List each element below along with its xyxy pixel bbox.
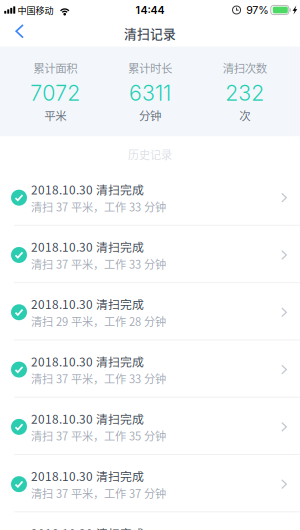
staticText: 2018.10.30 清扫完成 xyxy=(31,410,144,427)
staticText: 中国移动 xyxy=(17,3,53,16)
button[interactable]: 2018.10.30 清扫完成 xyxy=(0,168,300,226)
staticText: 累计面积 xyxy=(33,59,77,76)
staticText: 7072 xyxy=(30,80,80,106)
staticText: 2018.10.30 清扫完成 xyxy=(31,467,144,484)
staticText: 平米 xyxy=(44,107,66,123)
staticText: 清扫 37 平米，工作 37 分钟 xyxy=(31,485,166,501)
staticText: 6311 xyxy=(129,80,171,106)
staticText: 分钟 xyxy=(139,107,161,123)
staticText: 14:44 xyxy=(135,3,164,16)
staticText: 清扫 29 平米，工作 28 分钟 xyxy=(31,313,166,329)
button[interactable]: 2018.10.30 清扫完成 xyxy=(0,512,300,530)
staticText: 97% xyxy=(246,3,268,16)
button[interactable]: 2018.10.30 清扫完成 xyxy=(0,340,300,398)
staticText: 次 xyxy=(239,107,250,123)
staticText: 清扫次数 xyxy=(223,59,267,76)
staticText: 清扫 37 平米，工作 33 分钟 xyxy=(31,198,166,215)
staticText: 2018.10.30 清扫完成 xyxy=(31,181,144,198)
staticText: 清扫记录 xyxy=(124,24,176,42)
staticText: 2018.10.30 清扫完成 xyxy=(31,295,144,312)
staticText: 2018.10.30 清扫完成 xyxy=(31,238,144,255)
button[interactable]: 2018.10.30 清扫完成 xyxy=(0,455,300,512)
staticText: 清扫 37 平米，工作 33 分钟 xyxy=(31,370,166,386)
staticText: 2018.10.30 清扫完成 xyxy=(31,524,144,530)
staticText: 清扫 37 平米，工作 35 分钟 xyxy=(31,428,166,444)
button[interactable]: Back xyxy=(0,22,36,44)
staticText: 累计时长 xyxy=(128,59,172,76)
button[interactable]: 2018.10.30 清扫完成 xyxy=(0,283,300,340)
button[interactable]: 2018.10.30 清扫完成 xyxy=(0,226,300,283)
button[interactable]: 2018.10.30 清扫完成 xyxy=(0,398,300,455)
staticText: 清扫 37 平米，工作 33 分钟 xyxy=(31,256,166,272)
staticText: 历史记录 xyxy=(128,146,172,162)
staticText: 232 xyxy=(225,80,264,106)
staticText: 2018.10.30 清扫完成 xyxy=(31,353,144,370)
